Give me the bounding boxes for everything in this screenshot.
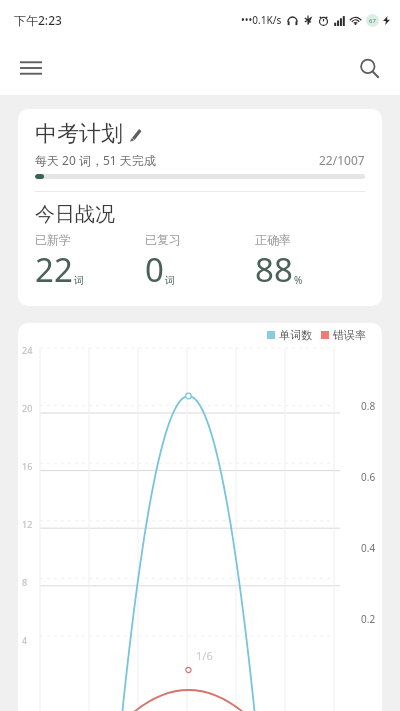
button[interactable]: Edit plan [123,122,147,146]
staticText: 0.4 [361,541,376,555]
staticText: 词 [165,274,175,287]
staticText: 67 [369,17,376,25]
staticText: 8 [22,576,28,588]
staticText: 词 [74,274,84,287]
staticText: 每天 20 词，51 天完成 [35,152,156,168]
staticText: 下午2:23 [14,12,62,28]
staticText: 0.6 [361,470,376,484]
staticText: 22/1007 [319,152,365,168]
staticText: 0.2 [361,612,376,626]
staticText: 20 [22,402,33,414]
staticText: •••0.1K/s [241,13,282,27]
staticText: 4 [22,634,28,646]
staticText: 16 [22,460,33,472]
staticText: 1/6 [196,648,213,663]
staticText: 已复习 [145,232,181,247]
staticText: 0 [145,247,164,292]
staticText: 88 [255,247,293,292]
staticText: 单词数 [279,328,312,342]
staticText: 正确率 [255,232,291,247]
staticText: 22 [35,247,73,292]
button[interactable]: Search [346,45,392,91]
staticText: % [294,273,303,287]
staticText: 中考计划 [35,120,123,148]
button[interactable]: Open navigation menu [8,45,54,91]
button[interactable]: 中考计划 [18,109,382,306]
staticText: 24 [22,344,33,356]
staticText: 12 [22,518,33,530]
staticText: 错误率 [333,328,366,342]
staticText: 已新学 [35,232,71,247]
staticText: 0.8 [361,399,376,413]
staticText: 今日战况 [35,202,115,227]
